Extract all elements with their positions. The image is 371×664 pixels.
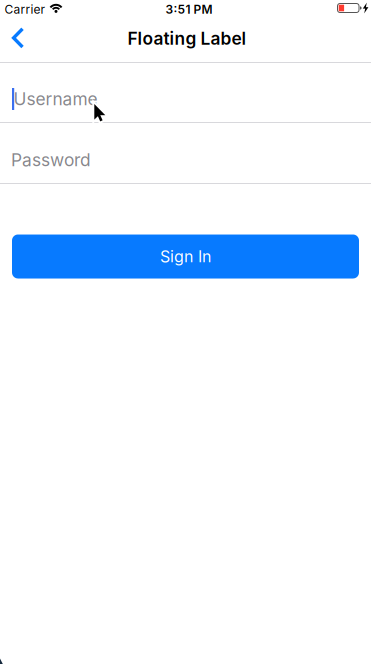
button[interactable]: Sign In <box>12 234 359 278</box>
staticText: Username <box>14 89 98 109</box>
staticText: 3:51 PM <box>166 2 213 16</box>
staticText: Floating Label <box>127 28 246 49</box>
button[interactable]: Back <box>0 0 44 56</box>
staticText: Sign In <box>160 247 211 266</box>
button[interactable]: Username <box>0 62 371 122</box>
staticText: Carrier <box>5 2 46 16</box>
button[interactable]: Password <box>0 123 371 183</box>
staticText: Password <box>11 150 91 170</box>
